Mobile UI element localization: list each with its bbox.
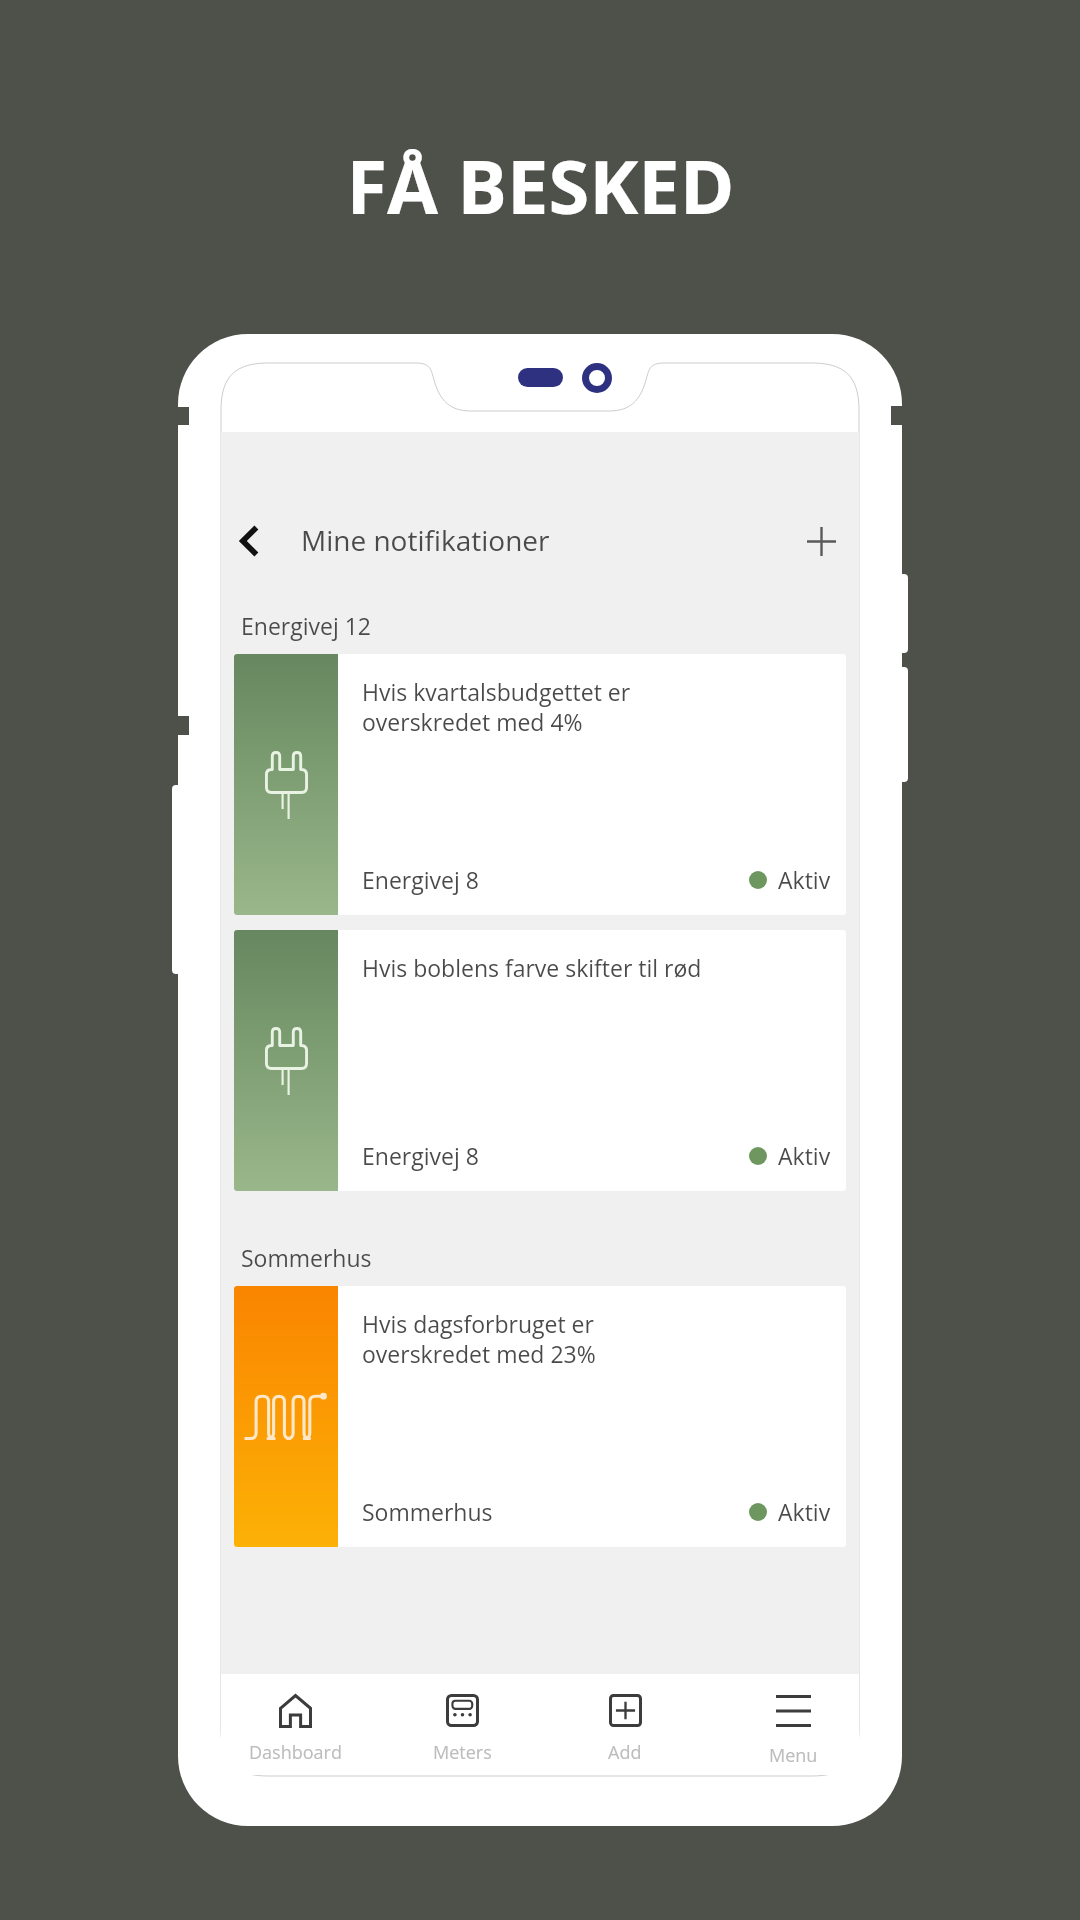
staticText: Hvis boblens farve skifter til rød	[362, 952, 702, 983]
staticText: Add	[608, 1740, 642, 1765]
staticText: Energivej 12	[241, 610, 371, 641]
staticText: Menu	[769, 1743, 818, 1768]
button[interactable]: Add	[565, 1680, 685, 1768]
button[interactable]: Add notification	[793, 513, 849, 569]
staticText: Meters	[433, 1740, 492, 1765]
staticText: Energivej 8	[362, 1140, 479, 1171]
staticText: Aktiv	[778, 864, 831, 895]
button[interactable]: Hvis boblens farve skifter til rød	[234, 930, 846, 1191]
staticText: Hvis dagsforbruget er overskredet med 23…	[362, 1308, 596, 1369]
staticText: Aktiv	[778, 1496, 831, 1527]
button[interactable]: Hvis kvartalsbudgettet er overskredet me…	[234, 654, 846, 915]
staticText: Sommerhus	[241, 1242, 372, 1273]
button[interactable]: Hvis dagsforbruget er overskredet med 23…	[234, 1286, 846, 1547]
button[interactable]: Dashboard	[235, 1680, 355, 1768]
staticText: Sommerhus	[362, 1496, 493, 1527]
staticText: Hvis kvartalsbudgettet er overskredet me…	[362, 676, 631, 737]
staticText: FÅ BESKED	[346, 135, 735, 236]
button[interactable]: Menu	[733, 1680, 853, 1768]
staticText: Aktiv	[778, 1140, 831, 1171]
button[interactable]: Meters	[402, 1680, 522, 1768]
staticText: Energivej 8	[362, 864, 479, 895]
button[interactable]: Back	[221, 513, 277, 569]
staticText: Mine notifikationer	[301, 521, 550, 559]
staticText: Dashboard	[249, 1740, 342, 1765]
